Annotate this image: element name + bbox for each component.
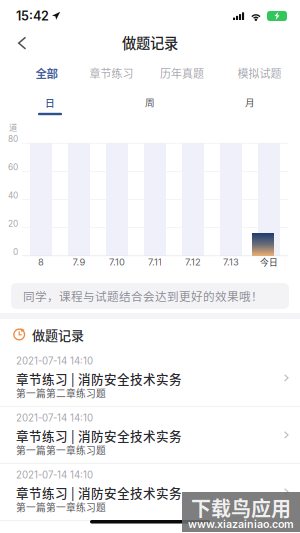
staticText: 2021-07-14 14:10: [16, 469, 93, 481]
button[interactable]: 2021-07-14 14:10: [0, 407, 300, 464]
staticText: 7.12: [185, 256, 201, 268]
staticText: 60: [8, 162, 18, 172]
staticText: 章节练习 | 消防安全技术实务: [16, 483, 182, 502]
staticText: 月: [245, 95, 255, 109]
button[interactable]: 返回: [8, 28, 36, 58]
staticText: 周: [145, 95, 155, 109]
staticText: 40: [8, 190, 18, 200]
staticText: 下载鸟应用: [191, 493, 291, 522]
button[interactable]: 模拟试题: [218, 65, 300, 81]
staticText: 章节练习 | 消防安全技术实务: [16, 426, 182, 445]
button[interactable]: 全部: [15, 65, 77, 81]
staticText: www.xiazainiao.com: [188, 517, 294, 530]
staticText: 日: [45, 96, 55, 110]
staticText: 历年真题: [160, 65, 204, 81]
button[interactable]: 周: [100, 95, 200, 117]
button[interactable]: 2021-07-14 14:10: [0, 350, 300, 407]
staticText: 章节练习: [89, 65, 133, 81]
staticText: 模拟试题: [237, 65, 281, 81]
staticText: 道: [9, 121, 17, 133]
button[interactable]: 日: [0, 95, 100, 117]
staticText: 0: [13, 247, 18, 257]
staticText: 7.10: [109, 256, 125, 268]
staticText: 7.9: [72, 256, 85, 268]
staticText: 第一篇第二章练习题: [16, 386, 106, 400]
button[interactable]: 章节练习: [77, 65, 145, 81]
staticText: 同学，课程与试题结合会达到更好的效果哦！: [23, 288, 263, 304]
staticText: 第一篇第一章练习题: [16, 443, 106, 457]
staticText: 2021-07-14 14:10: [16, 412, 93, 424]
staticText: 章节练习 | 消防安全技术实务: [16, 369, 182, 388]
staticText: 全部: [35, 65, 57, 81]
staticText: 8: [38, 256, 44, 268]
button[interactable]: 历年真题: [145, 65, 218, 81]
staticText: 第一篇第一章练习题: [16, 500, 106, 514]
button[interactable]: 月: [200, 95, 300, 117]
staticText: 15:42: [16, 8, 49, 24]
staticText: 做题记录: [32, 325, 84, 344]
staticText: 80: [8, 134, 18, 144]
staticText: 7.11: [148, 256, 162, 268]
staticText: 2021-07-14 14:10: [16, 355, 93, 367]
staticText: 7.13: [223, 256, 239, 268]
staticText: 20: [8, 219, 18, 229]
staticText: 今日: [260, 256, 278, 268]
staticText: 做题记录: [122, 32, 178, 53]
button[interactable]: 2021-07-14 14:10: [0, 464, 300, 521]
